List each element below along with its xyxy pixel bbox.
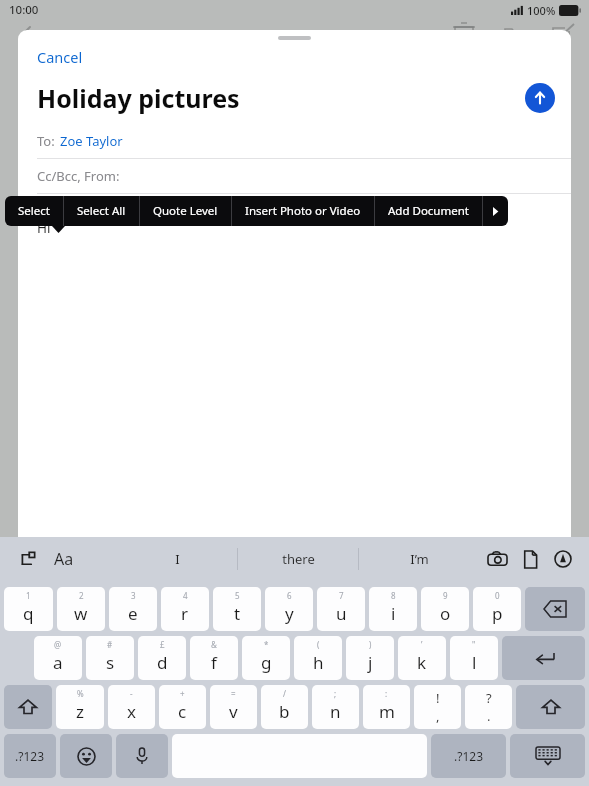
staticText: g <box>261 651 272 674</box>
staticText: Zoe Taylor <box>60 132 123 150</box>
staticText: % <box>77 688 84 699</box>
staticText: z <box>76 700 84 723</box>
button[interactable]: - <box>108 685 155 729</box>
staticText: @ <box>54 639 62 650</box>
button[interactable]: # <box>86 636 134 680</box>
staticText: q <box>23 602 34 625</box>
button[interactable]: ( <box>294 636 342 680</box>
button[interactable]: ? <box>465 685 512 729</box>
staticText: ; <box>334 688 337 699</box>
staticText: s <box>106 651 115 674</box>
staticText: Hi <box>37 219 51 237</box>
staticText: t <box>234 602 241 625</box>
button[interactable]: More <box>483 196 508 226</box>
staticText: ) <box>369 639 372 650</box>
staticText: .?123 <box>15 748 45 764</box>
staticText: £ <box>160 639 165 650</box>
staticText: .?123 <box>454 748 484 764</box>
button[interactable]: Select All <box>64 196 139 226</box>
staticText: l <box>472 651 477 674</box>
staticText: c <box>178 700 187 723</box>
button[interactable]: 9 <box>421 587 469 631</box>
staticText: 100% <box>527 3 556 18</box>
button[interactable]: Dictation <box>116 734 168 778</box>
button[interactable]: " <box>450 636 498 680</box>
button[interactable]: Insert Photo or Video <box>232 196 374 226</box>
button[interactable]: Emoji <box>60 734 112 778</box>
button[interactable]: 3 <box>109 587 157 631</box>
staticText: b <box>279 700 290 723</box>
staticText: ( <box>317 639 320 650</box>
button[interactable]: = <box>210 685 257 729</box>
button[interactable]: 2 <box>57 587 105 631</box>
button[interactable]: Shift <box>516 685 585 729</box>
button[interactable]: 8 <box>369 587 417 631</box>
button[interactable]: 4 <box>161 587 209 631</box>
button[interactable]: ) <box>346 636 394 680</box>
button[interactable]: Aa <box>50 544 78 574</box>
button[interactable]: ; <box>312 685 359 729</box>
button[interactable]: Cancel <box>18 42 571 72</box>
button[interactable]: Shift <box>4 685 52 729</box>
button[interactable]: Select <box>5 196 63 226</box>
staticText: r <box>181 602 189 625</box>
staticText: . <box>487 707 491 725</box>
staticText: ! <box>436 689 440 707</box>
staticText: : <box>385 688 388 699</box>
button[interactable]: Camera <box>483 545 511 573</box>
button[interactable]: 0 <box>473 587 521 631</box>
button[interactable]: Numbers <box>4 734 56 778</box>
staticText: Cancel <box>37 47 83 67</box>
staticText: - <box>130 688 133 699</box>
button[interactable]: Numbers <box>431 734 506 778</box>
button[interactable]: ! <box>414 685 461 729</box>
staticText: 5 <box>235 590 240 601</box>
staticText: x <box>127 700 136 723</box>
button[interactable]: Return <box>502 636 585 680</box>
button[interactable]: £ <box>138 636 186 680</box>
button[interactable]: Hide keyboard <box>510 734 585 778</box>
staticText: Add Document <box>388 203 469 219</box>
button[interactable]: Quote Level <box>140 196 231 226</box>
staticText: j <box>368 651 373 674</box>
button[interactable]: I <box>118 544 237 574</box>
button[interactable]: Attach document <box>516 545 544 573</box>
staticText: y <box>285 602 294 625</box>
button[interactable]: ’ <box>398 636 446 680</box>
staticText: 3 <box>131 590 136 601</box>
button[interactable]: Undo <box>14 546 40 572</box>
staticText: there <box>282 550 315 568</box>
staticText: To: <box>37 132 55 150</box>
button[interactable]: 5 <box>213 587 261 631</box>
button[interactable]: Add Document <box>375 196 482 226</box>
staticText: v <box>229 700 238 723</box>
staticText: 4 <box>183 590 188 601</box>
button[interactable]: 7 <box>317 587 365 631</box>
staticText: I <box>175 550 180 568</box>
button[interactable]: there <box>238 544 358 574</box>
button[interactable]: + <box>159 685 206 729</box>
staticText: k <box>417 651 427 674</box>
staticText: + <box>180 688 185 699</box>
button[interactable]: % <box>56 685 104 729</box>
button[interactable]: Cc/Bcc, From: <box>18 159 571 193</box>
staticText: Quote Level <box>153 203 218 219</box>
button[interactable]: To: <box>18 124 571 158</box>
button[interactable]: @ <box>34 636 82 680</box>
staticText: * <box>264 639 269 650</box>
button[interactable]: & <box>190 636 238 680</box>
button[interactable]: 6 <box>265 587 313 631</box>
button[interactable]: 1 <box>4 587 53 631</box>
staticText: # <box>107 639 113 650</box>
button[interactable]: Send <box>525 83 555 113</box>
button[interactable]: Markup <box>549 545 577 573</box>
staticText: Holiday pictures <box>37 81 240 115</box>
staticText: 10:00 <box>9 2 39 18</box>
button[interactable]: I’m <box>359 544 479 574</box>
button[interactable]: * <box>242 636 290 680</box>
button[interactable]: / <box>261 685 308 729</box>
button[interactable]: Backspace <box>525 587 585 631</box>
staticText: ’ <box>421 639 423 650</box>
button[interactable]: : <box>363 685 410 729</box>
